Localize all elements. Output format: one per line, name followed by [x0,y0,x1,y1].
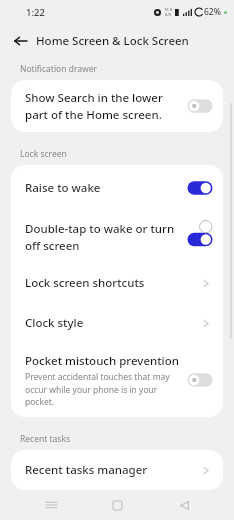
staticText: Notification drawer [20,63,98,75]
button[interactable]: Back [7,28,33,54]
staticText: Clock style [25,315,203,331]
staticText: Recent tasks [20,433,71,445]
button[interactable]: Show Search in the lower part of the Hom… [11,80,223,132]
button[interactable]: Pocket mistouch prevention [11,343,223,417]
staticText: Pocket mistouch prevention [25,353,179,369]
staticText: 1:22 [26,6,45,19]
button[interactable]: Enabled [186,224,214,250]
button[interactable]: Recent tasks manager [11,450,223,490]
staticText: Home Screen & Lock Screen [36,33,189,49]
button[interactable]: Back [168,490,200,520]
staticText: Lock screen [20,148,67,160]
staticText: Double-tap to wake or turn off screen [25,221,175,253]
button[interactable]: Recent apps [35,490,67,520]
staticText: Recent tasks manager [25,462,203,478]
staticText: Prevent accidental touches that may occu… [25,371,170,407]
staticText: Show Search in the lower part of the Hom… [25,90,163,122]
button[interactable]: Enabled [186,175,214,201]
button[interactable]: Disabled [186,93,214,119]
button[interactable]: Disabled [186,367,214,393]
staticText: Raise to wake [25,180,101,196]
button[interactable]: Clock style [11,303,223,343]
button[interactable]: Raise to wake [11,165,223,211]
button[interactable]: Lock screen shortcuts [11,263,223,303]
button[interactable]: Double-tap to wake or turn off screen [11,211,223,263]
button[interactable]: Home [101,490,133,520]
staticText: K/S [165,12,172,17]
staticText: 62% [204,6,221,18]
staticText: 16.0 [164,7,172,12]
staticText: Lock screen shortcuts [25,275,203,291]
